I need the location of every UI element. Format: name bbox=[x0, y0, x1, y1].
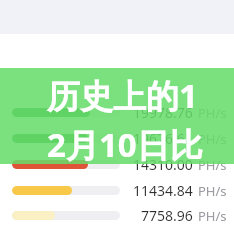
staticText: PH/s bbox=[198, 104, 227, 122]
button[interactable]: 19978.76 bbox=[0, 100, 234, 124]
staticText: 19978.76 bbox=[133, 103, 193, 122]
button[interactable]: 19676.61 bbox=[0, 126, 234, 150]
other: 历史上的12月10日比 bbox=[47, 73, 203, 167]
staticText: PH/s bbox=[198, 156, 227, 174]
staticText: PH/s bbox=[198, 207, 227, 225]
staticText: PH/s bbox=[198, 130, 227, 148]
staticText: 7758.96 bbox=[141, 206, 193, 225]
staticText: 历史上的1 bbox=[47, 73, 198, 118]
staticText: 19676.61 bbox=[133, 129, 193, 148]
button[interactable]: 14310.00 bbox=[0, 152, 234, 176]
staticText: 11434.84 bbox=[133, 181, 193, 200]
staticText: 2月10日比 bbox=[47, 122, 203, 167]
staticText: 14310.00 bbox=[133, 155, 193, 174]
button[interactable]: 11434.84 bbox=[0, 178, 234, 202]
staticText: PH/s bbox=[198, 182, 227, 200]
button[interactable]: 7758.96 bbox=[0, 203, 234, 227]
